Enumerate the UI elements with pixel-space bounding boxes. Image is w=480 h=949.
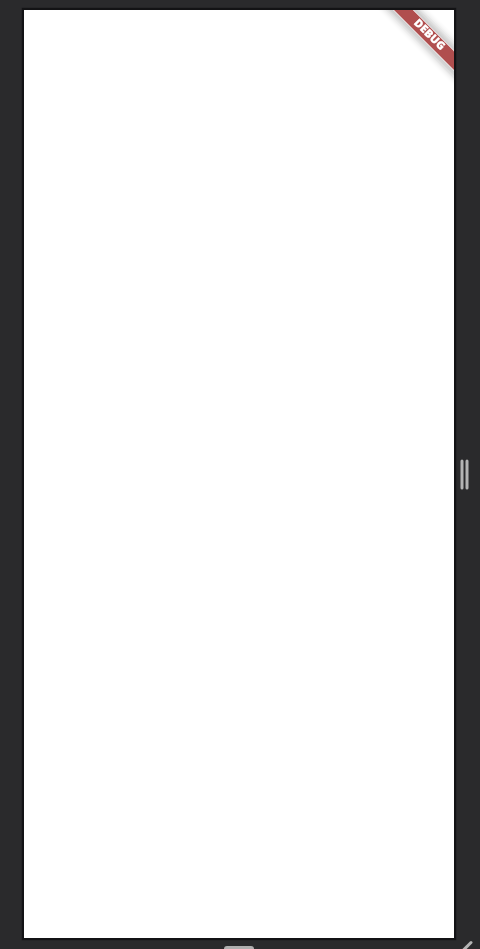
button[interactable]: Resize window width	[456, 452, 472, 498]
button[interactable]: Resize window	[456, 933, 480, 949]
button[interactable]: Home	[224, 946, 254, 949]
